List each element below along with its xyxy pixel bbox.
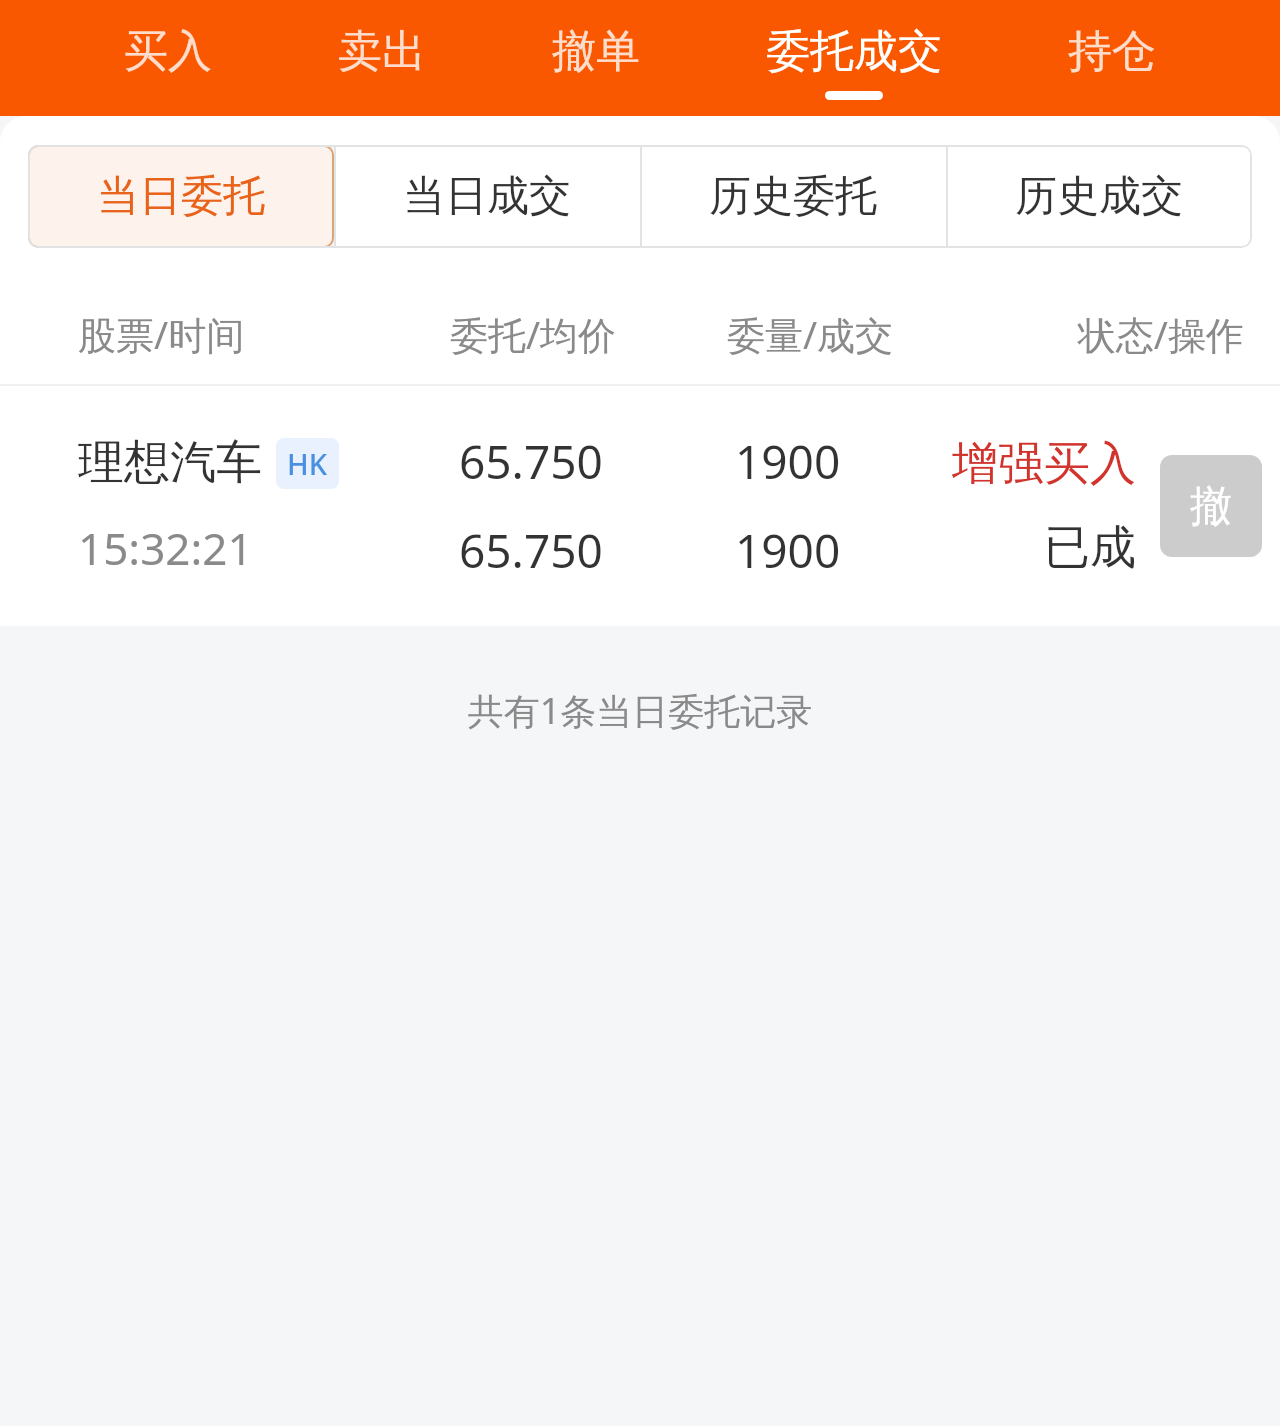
button[interactable]: 买入	[108, 0, 228, 116]
staticText: 委托成交	[766, 24, 942, 79]
staticText: 撤单	[552, 24, 640, 79]
staticText: 历史成交	[1015, 170, 1183, 223]
staticText: 卖出	[338, 24, 426, 79]
staticText: HK	[287, 444, 328, 483]
button[interactable]: 撤单	[1160, 455, 1262, 557]
button[interactable]: 卖出	[322, 0, 442, 116]
staticText: 委量/成交	[675, 308, 945, 360]
staticText: 共有1条当日委托记录	[0, 686, 1280, 735]
staticText: 委托/均价	[391, 308, 675, 360]
staticText: 1900	[735, 430, 841, 493]
staticText: 65.750	[459, 519, 603, 582]
button[interactable]: 理想汽车	[0, 386, 1280, 626]
button[interactable]: 当日成交	[334, 145, 640, 248]
staticText: 理想汽车	[78, 434, 262, 492]
staticText: 状态/操作	[945, 308, 1244, 360]
staticText: 1900	[735, 519, 841, 582]
staticText: 65.750	[459, 430, 603, 493]
button[interactable]: 历史委托	[640, 145, 946, 248]
button[interactable]: 持仓	[1052, 0, 1172, 116]
staticText: 撤	[1190, 480, 1232, 533]
staticText: 持仓	[1068, 24, 1156, 79]
staticText: 买入	[124, 24, 212, 79]
staticText: 已成	[1044, 519, 1136, 577]
staticText: 股票/时间	[78, 308, 391, 360]
button[interactable]: 历史成交	[946, 145, 1252, 248]
staticText: 历史委托	[709, 170, 877, 223]
staticText: 15:32:21	[78, 518, 253, 578]
button[interactable]: 委托成交	[750, 0, 958, 116]
button[interactable]: 撤单	[536, 0, 656, 116]
button[interactable]: 当日委托	[28, 145, 334, 248]
staticText: 当日成交	[403, 170, 571, 223]
staticText: 增强买入	[952, 435, 1136, 493]
staticText: 当日委托	[97, 170, 265, 223]
